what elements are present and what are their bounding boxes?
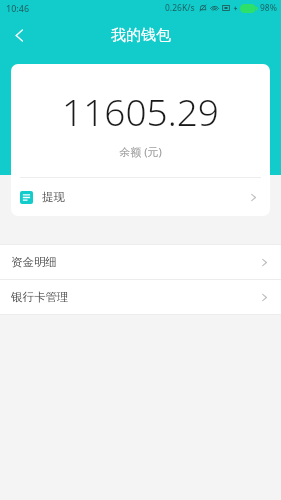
button[interactable]: Back xyxy=(0,16,38,54)
staticText: 银行卡管理 xyxy=(11,290,69,304)
staticText: 98% xyxy=(260,2,277,14)
button[interactable]: 资金明细 xyxy=(0,245,281,279)
staticText: 提现 xyxy=(42,190,65,204)
staticText: 0.26K/s xyxy=(165,2,195,14)
staticText: 10:46 xyxy=(6,2,30,14)
staticText: 余额 (元) xyxy=(11,144,270,159)
staticText: 我的钱包 xyxy=(111,26,171,45)
button[interactable]: 提现 xyxy=(11,178,270,216)
button[interactable]: 银行卡管理 xyxy=(0,280,281,314)
staticText: 资金明细 xyxy=(11,255,57,269)
staticText: 11605.29 xyxy=(11,86,270,136)
